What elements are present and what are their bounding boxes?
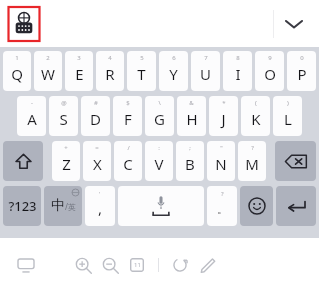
staticText: M bbox=[245, 154, 259, 174]
staticText: 。 bbox=[217, 202, 228, 216]
button[interactable]: & bbox=[177, 96, 206, 136]
staticText: ( bbox=[255, 99, 257, 107]
button[interactable]: 8 bbox=[223, 51, 252, 91]
staticText: J bbox=[221, 109, 226, 129]
button[interactable]: Shift bbox=[3, 141, 43, 181]
button[interactable]: ? bbox=[238, 141, 266, 181]
button[interactable]: 7 bbox=[191, 51, 220, 91]
staticText: A bbox=[27, 109, 37, 129]
button[interactable]: 3 bbox=[65, 51, 93, 91]
button[interactable]: Switch input method bbox=[8, 6, 40, 42]
staticText: # bbox=[94, 99, 98, 107]
button[interactable]: Rotate bbox=[167, 252, 193, 278]
button[interactable]: = bbox=[83, 141, 111, 181]
staticText: O bbox=[264, 64, 276, 84]
staticText: , bbox=[98, 198, 103, 218]
staticText: & bbox=[189, 99, 194, 107]
staticText: ? bbox=[221, 190, 224, 198]
button[interactable]: # bbox=[81, 96, 110, 136]
button[interactable]: 9 bbox=[255, 51, 284, 91]
button[interactable]: Zoom out bbox=[97, 252, 123, 278]
staticText: 2 bbox=[46, 54, 50, 62]
staticText: Y bbox=[169, 64, 178, 84]
button[interactable]: 2 bbox=[34, 51, 62, 91]
button[interactable]: 0 bbox=[287, 51, 316, 91]
staticText: " bbox=[220, 144, 223, 152]
staticText: ?123 bbox=[8, 197, 37, 215]
button[interactable]: \ bbox=[145, 96, 174, 136]
button[interactable]: @ bbox=[49, 96, 78, 136]
staticText: I bbox=[235, 64, 241, 84]
button[interactable]: Actual size bbox=[124, 252, 150, 278]
button[interactable]: - bbox=[17, 96, 46, 136]
staticText: ? bbox=[251, 144, 254, 152]
staticText: ' bbox=[99, 190, 101, 198]
staticText: ; bbox=[189, 144, 191, 152]
staticText: Q bbox=[11, 64, 23, 84]
button[interactable]: Chinese English toggle bbox=[44, 186, 82, 226]
staticText: + bbox=[64, 144, 68, 152]
button[interactable]: $ bbox=[113, 96, 142, 136]
staticText: N bbox=[215, 154, 227, 174]
button[interactable]: 4 bbox=[96, 51, 124, 91]
staticText: 6 bbox=[172, 54, 176, 62]
staticText: : bbox=[158, 144, 160, 152]
button[interactable]: Display bbox=[12, 251, 40, 279]
staticText: Z bbox=[62, 154, 71, 174]
button[interactable]: 5 bbox=[127, 51, 156, 91]
button[interactable]: Enter bbox=[276, 186, 316, 226]
staticText: $ bbox=[126, 99, 130, 107]
staticText: K bbox=[251, 109, 261, 129]
staticText: ) bbox=[287, 99, 289, 107]
staticText: U bbox=[200, 64, 211, 84]
staticText: 0 bbox=[300, 54, 304, 62]
staticText: D bbox=[90, 109, 101, 129]
staticText: V bbox=[154, 154, 164, 174]
staticText: /英 bbox=[65, 201, 76, 212]
staticText: 11 bbox=[134, 261, 141, 269]
staticText: 1 bbox=[15, 54, 19, 62]
staticText: 5 bbox=[140, 54, 144, 62]
staticText: * bbox=[222, 99, 226, 107]
button[interactable]: ) bbox=[273, 96, 302, 136]
staticText: 8 bbox=[236, 54, 240, 62]
button[interactable]: Comma bbox=[85, 186, 115, 226]
staticText: T bbox=[137, 64, 146, 84]
staticText: R bbox=[105, 64, 115, 84]
staticText: 7 bbox=[204, 54, 208, 62]
button[interactable]: Edit bbox=[195, 252, 221, 278]
staticText: 3 bbox=[77, 54, 81, 62]
staticText: \ bbox=[158, 99, 161, 107]
button[interactable]: / bbox=[114, 141, 142, 181]
staticText: B bbox=[185, 154, 195, 174]
button[interactable]: Backspace bbox=[275, 141, 316, 181]
button[interactable]: " bbox=[207, 141, 235, 181]
button[interactable]: Space bbox=[118, 186, 204, 226]
button[interactable]: Emoji bbox=[240, 186, 273, 226]
staticText: G bbox=[154, 109, 165, 129]
button[interactable]: Symbols bbox=[3, 186, 41, 226]
button[interactable]: 1 bbox=[3, 51, 31, 91]
button[interactable]: Zoom in bbox=[70, 252, 96, 278]
button[interactable]: Collapse keyboard bbox=[277, 7, 311, 41]
button[interactable]: 6 bbox=[159, 51, 188, 91]
staticText: 中 bbox=[51, 197, 65, 215]
staticText: 4 bbox=[108, 54, 112, 62]
button[interactable]: ( bbox=[241, 96, 270, 136]
staticText: L bbox=[284, 109, 292, 129]
button[interactable]: + bbox=[52, 141, 80, 181]
button[interactable]: : bbox=[145, 141, 173, 181]
staticText: / bbox=[127, 144, 130, 152]
staticText: P bbox=[297, 64, 307, 84]
staticText: H bbox=[186, 109, 198, 129]
staticText: C bbox=[123, 154, 133, 174]
staticText: F bbox=[124, 109, 132, 129]
staticText: S bbox=[59, 109, 68, 129]
button[interactable]: * bbox=[209, 96, 238, 136]
staticText: = bbox=[95, 144, 99, 152]
button[interactable]: Period bbox=[207, 186, 237, 226]
button[interactable]: ; bbox=[176, 141, 204, 181]
staticText: - bbox=[31, 99, 33, 107]
staticText: W bbox=[41, 64, 55, 84]
staticText: @ bbox=[61, 99, 67, 107]
